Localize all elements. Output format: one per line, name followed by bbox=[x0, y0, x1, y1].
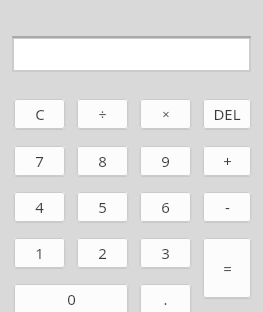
staticText: DEL bbox=[213, 104, 241, 124]
button[interactable]: ÷ bbox=[77, 99, 128, 129]
staticText: 2 bbox=[98, 243, 107, 263]
button[interactable]: 8 bbox=[77, 146, 128, 176]
button[interactable]: 0 bbox=[14, 284, 128, 312]
staticText: 7 bbox=[35, 151, 44, 171]
staticText: + bbox=[223, 151, 232, 171]
button[interactable]: 1 bbox=[14, 238, 65, 268]
button[interactable]: 6 bbox=[140, 192, 191, 222]
staticText: 5 bbox=[98, 197, 107, 217]
button[interactable]: = bbox=[203, 238, 251, 298]
staticText: 0 bbox=[67, 289, 76, 309]
button[interactable]: 3 bbox=[140, 238, 191, 268]
staticText: 4 bbox=[35, 197, 44, 217]
staticText: × bbox=[162, 105, 170, 123]
button[interactable]: - bbox=[203, 192, 251, 222]
staticText: = bbox=[223, 258, 232, 278]
staticText: . bbox=[163, 289, 168, 309]
staticText: 1 bbox=[35, 243, 44, 263]
staticText: 9 bbox=[161, 151, 170, 171]
staticText: - bbox=[225, 197, 230, 217]
button[interactable]: + bbox=[203, 146, 251, 176]
button[interactable]: 5 bbox=[77, 192, 128, 222]
staticText: C bbox=[35, 104, 45, 124]
button[interactable]: × bbox=[140, 99, 191, 129]
staticText: ÷ bbox=[98, 105, 107, 124]
staticText: 3 bbox=[161, 243, 170, 263]
button[interactable]: . bbox=[140, 284, 191, 312]
staticText: 6 bbox=[161, 197, 170, 217]
button[interactable]: 9 bbox=[140, 146, 191, 176]
button[interactable]: 7 bbox=[14, 146, 65, 176]
button[interactable]: 4 bbox=[14, 192, 65, 222]
button[interactable]: C bbox=[14, 99, 65, 129]
button[interactable]: 2 bbox=[77, 238, 128, 268]
button[interactable]: DEL bbox=[203, 99, 251, 129]
staticText: 8 bbox=[98, 151, 107, 171]
